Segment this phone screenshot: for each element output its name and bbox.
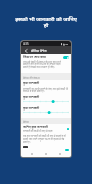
- staticText: जानकारी को किसी भी तरह से बदलें: [23, 130, 53, 133]
- button[interactable]: Back: [23, 48, 28, 53]
- staticText: कुछ जानकारी: [23, 106, 40, 110]
- staticText: आप इसे किसी भी विकल्प के साथ काम में ले …: [23, 60, 61, 69]
- button[interactable]: Recents: [57, 151, 63, 157]
- button[interactable]: Home: [43, 151, 49, 157]
- staticText: जानिए कुछ जानकारी: [23, 125, 48, 129]
- staticText: कुछ जानकारी: [23, 95, 40, 99]
- staticText: जिस पर आप काम: [23, 55, 46, 59]
- staticText: ▮ ▲ 85: [61, 42, 69, 45]
- button[interactable]: Ok: [23, 146, 28, 148]
- staticText: जानकारी का उपयोग करने के लिए आप इसे किसी…: [23, 87, 69, 93]
- button[interactable]: Back: [29, 151, 35, 157]
- button[interactable]: Info: [67, 128, 69, 130]
- staticText: कुछ जानकारी: [23, 81, 40, 85]
- staticText: सेटिंग्स मैनेज: [31, 48, 47, 52]
- button[interactable]: Slider: [23, 100, 69, 103]
- button[interactable]: Toggle: [63, 56, 69, 59]
- staticText: 4:35: [23, 42, 29, 46]
- staticText: इसको भी जानकारी को जानिए हो: [13, 15, 79, 28]
- staticText: जब आप जानकारी को किसी भी तरह से बदलते है…: [23, 135, 69, 144]
- button[interactable]: Slider: [23, 111, 69, 114]
- staticText: सेटिंग्स: [23, 120, 29, 123]
- staticText: सेटिंग्स और विकल्प: [23, 76, 40, 79]
